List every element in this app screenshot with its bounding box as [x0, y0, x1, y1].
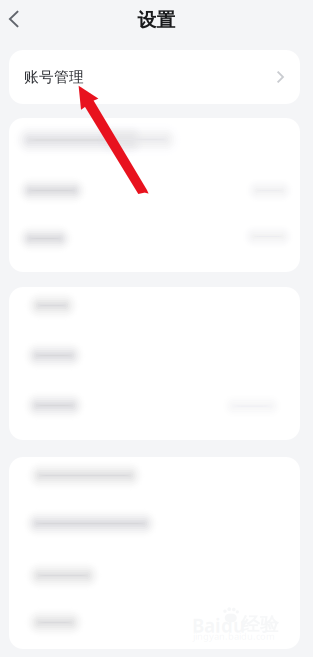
staticText: 经验 — [241, 613, 279, 636]
button[interactable]: 账号管理 — [9, 50, 300, 104]
staticText: 账号管理 — [24, 68, 84, 86]
staticText: 设置 — [137, 8, 175, 31]
button[interactable]: Back — [0, 2, 29, 36]
staticText: jingyan.baidu.com — [193, 630, 275, 642]
staticText: Baidu — [192, 613, 245, 638]
